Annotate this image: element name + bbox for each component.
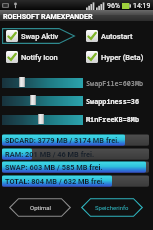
button[interactable]: Autostart [82,28,152,44]
button[interactable]: Optimal [9,198,71,217]
staticText: Swappiness=36 [86,97,140,106]
staticText: Swap Aktiv [21,32,59,41]
staticText: RAM: 201 MB / 46 MB frei. [5,150,95,159]
staticText: ROEHSOFT RAMEXPANDER [3,12,93,20]
staticText: MinFreeKB=8Mb [86,115,140,124]
staticText: Optimal [30,204,51,211]
staticText: Autostart [101,32,133,41]
button[interactable]: Hyper (Beta) [82,49,152,65]
button[interactable]: Swap Aktiv [2,28,75,44]
button[interactable]: TOTAL: 804 MB / 632 MB frei. [2,175,149,187]
button[interactable]: Speicherinfo [81,198,143,217]
button[interactable]: RAM: 201 MB / 46 MB frei. [2,148,149,160]
button[interactable]: Notify Icon [2,49,75,65]
staticText: Speicherinfo [95,204,129,211]
button[interactable] [2,96,83,106]
staticText: SwapFile=603Mb [86,79,144,88]
button[interactable] [2,115,83,125]
button[interactable] [2,78,83,88]
staticText: Hyper (Beta) [101,53,144,62]
staticText: SWAP: 603 MB / 585 MB frei. [5,163,103,172]
button[interactable]: SDCARD: 3779 MB / 3174 MB frei. [2,134,149,146]
staticText: SDCARD: 3779 MB / 3174 MB frei. [5,136,120,145]
staticText: 96% [107,2,120,10]
staticText: 14:19 [133,2,151,10]
staticText: TOTAL: 804 MB / 632 MB frei. [5,177,105,186]
staticText: Notify Icon [21,53,58,62]
button[interactable]: SWAP: 603 MB / 585 MB frei. [2,161,149,173]
